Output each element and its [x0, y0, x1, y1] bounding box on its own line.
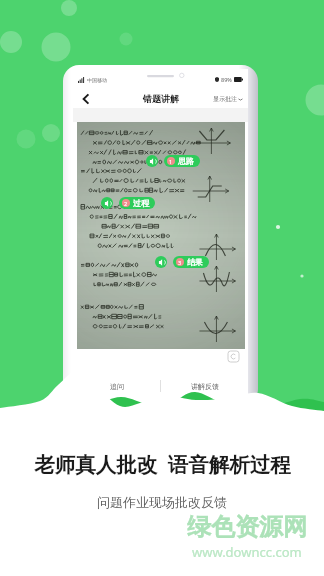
staticText: 显示批注: [213, 95, 237, 103]
button[interactable]: 追问: [73, 373, 160, 399]
staticText: 问题作业现场批改反馈: [97, 494, 227, 510]
button[interactable]: 显示批注: [213, 95, 243, 103]
button[interactable]: Rotate image: [228, 351, 239, 362]
button[interactable]: 讲解反馈: [161, 373, 248, 399]
staticText: 2: [124, 200, 128, 207]
staticText: 结果: [187, 257, 203, 267]
staticText: 绿色资源网: [187, 512, 307, 542]
button[interactable]: Play audio: [101, 197, 113, 209]
staticText: 3: [178, 259, 182, 266]
staticText: 1: [169, 158, 173, 165]
staticText: 89%: [221, 76, 232, 83]
staticText: 过程: [133, 198, 149, 208]
button[interactable]: Back: [79, 92, 93, 106]
button[interactable]: Play audio: [146, 155, 158, 167]
button[interactable]: 3: [173, 256, 209, 268]
staticText: 错题讲解: [143, 93, 179, 104]
staticText: 追问: [110, 382, 124, 391]
staticText: 讲解反馈: [191, 382, 219, 391]
button[interactable]: 2: [119, 197, 155, 209]
button[interactable]: Play audio: [155, 256, 167, 268]
staticText: 思路: [178, 156, 194, 166]
button[interactable]: 1: [164, 155, 200, 167]
staticText: 老师真人批改 语音解析过程: [34, 450, 291, 478]
staticText: www.downcc.com: [192, 543, 302, 561]
staticText: 中国移动: [87, 77, 107, 83]
